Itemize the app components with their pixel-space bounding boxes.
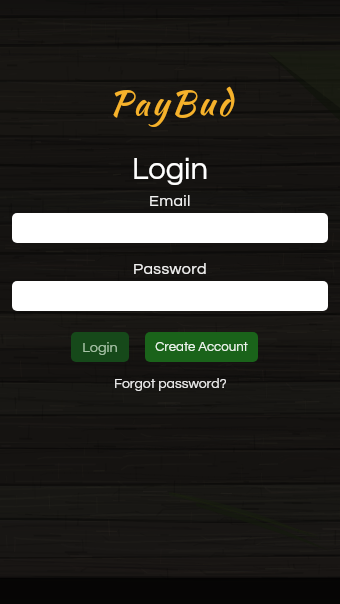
button[interactable]: Email input (12, 213, 328, 243)
staticText: PayBud (109, 78, 236, 127)
staticText: Login (132, 154, 209, 186)
button[interactable]: Password input (12, 281, 328, 311)
staticText: Login (82, 340, 118, 355)
staticText: Create Account (155, 340, 248, 354)
staticText: Password (133, 261, 207, 277)
staticText: Forgot password? (114, 377, 227, 391)
button[interactable]: Login (71, 332, 129, 362)
button[interactable]: Create Account (145, 332, 258, 362)
staticText: Email (149, 193, 191, 209)
button[interactable]: Forgot password? (106, 374, 235, 394)
